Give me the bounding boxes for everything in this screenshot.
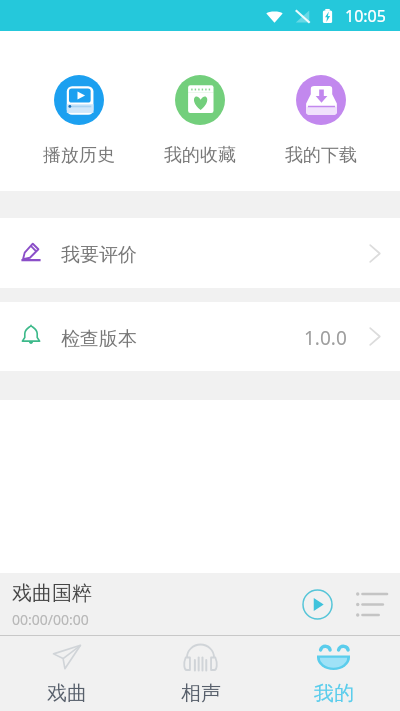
button[interactable]: 我要评价 bbox=[0, 218, 400, 288]
staticText: 00:00/00:00 bbox=[12, 610, 89, 629]
button[interactable]: 戏曲 bbox=[0, 636, 134, 711]
staticText: 我要评价 bbox=[61, 243, 137, 267]
button[interactable]: 相声 bbox=[134, 636, 267, 711]
staticText: 戏曲 bbox=[47, 681, 87, 706]
staticText: 我的收藏 bbox=[164, 144, 236, 167]
staticText: 我的 bbox=[314, 681, 354, 706]
button[interactable]: Playlist bbox=[356, 592, 387, 617]
staticText: 1.0.0 bbox=[304, 325, 347, 351]
staticText: 相声 bbox=[181, 681, 221, 706]
button[interactable]: 检查版本 bbox=[0, 302, 400, 371]
staticText: 播放历史 bbox=[43, 144, 115, 167]
staticText: 我的下载 bbox=[285, 144, 357, 167]
button[interactable]: Play bbox=[302, 589, 333, 620]
staticText: 10:05 bbox=[345, 5, 386, 27]
button[interactable]: 播放历史 bbox=[38, 75, 120, 167]
button[interactable]: 我的下载 bbox=[280, 75, 362, 167]
staticText: 戏曲国粹 bbox=[12, 581, 92, 606]
button[interactable]: 我的 bbox=[267, 636, 400, 711]
button[interactable]: 我的收藏 bbox=[159, 75, 241, 167]
staticText: 检查版本 bbox=[61, 327, 137, 351]
